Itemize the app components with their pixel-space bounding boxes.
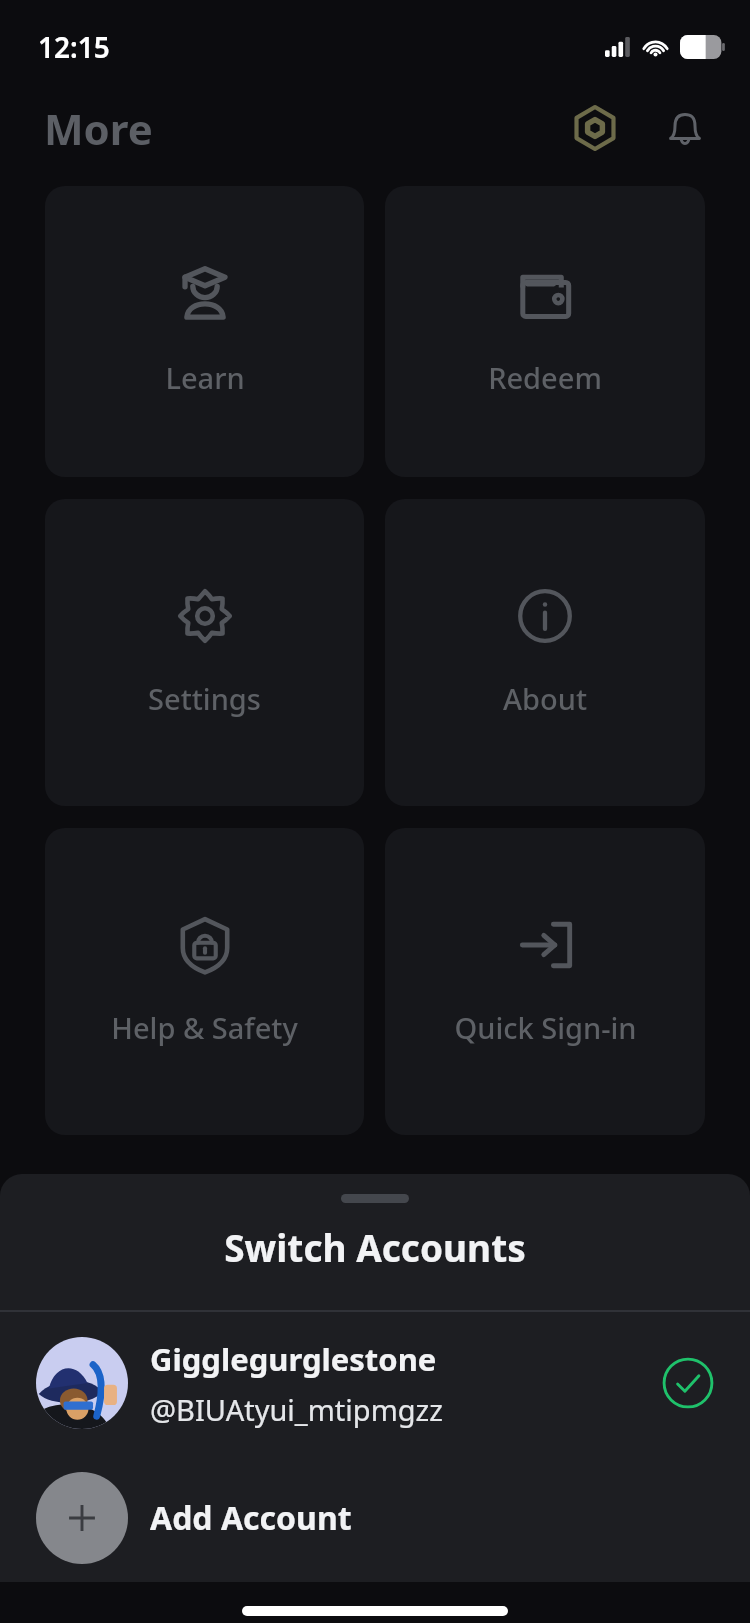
staticText: Help & Safety xyxy=(111,1008,298,1047)
staticText: Gigglegurglestone xyxy=(150,1338,437,1380)
button[interactable]: Notifications xyxy=(656,99,714,157)
button[interactable]: Gigglegurglestone xyxy=(0,1312,750,1454)
staticText: Learn xyxy=(165,358,245,397)
staticText: Settings xyxy=(148,679,261,718)
staticText: Add Account xyxy=(150,1496,352,1540)
button[interactable]: Robux xyxy=(566,99,624,157)
button[interactable]: Settings xyxy=(45,499,364,806)
staticText: Redeem xyxy=(488,358,602,397)
button[interactable]: Add Account xyxy=(0,1454,750,1582)
staticText: About xyxy=(503,679,587,718)
staticText: More xyxy=(44,100,153,157)
staticText: 12:15 xyxy=(38,28,110,66)
button[interactable]: About xyxy=(385,499,705,806)
button[interactable]: Help & Safety xyxy=(45,828,364,1135)
staticText: Quick Sign-in xyxy=(454,1008,637,1047)
staticText: Switch Accounts xyxy=(0,1222,750,1272)
button[interactable]: Quick Sign-in xyxy=(385,828,705,1135)
button[interactable]: Learn xyxy=(45,186,364,477)
button[interactable]: Redeem xyxy=(385,186,705,477)
staticText: @BIUAtyui_mtipmgzz xyxy=(150,1390,443,1429)
